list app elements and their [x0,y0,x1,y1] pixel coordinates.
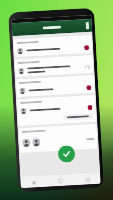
button[interactable]: Notificación [86,85,91,90]
button[interactable]: Contacto 1 [22,138,30,147]
button[interactable]: Notificación [87,105,93,110]
button[interactable]: Atrás [30,179,37,185]
button[interactable]: Notificación [16,75,95,97]
button[interactable]: Confirmar [58,145,75,163]
button[interactable]: Activar [84,65,90,69]
button[interactable]: Notificación [13,35,92,57]
button[interactable] [63,113,93,121]
button[interactable]: Activar [15,55,94,77]
button[interactable]: Contacto 1 [18,124,98,153]
button[interactable]: Recientes [84,176,91,182]
button[interactable]: Contacto 2 [32,138,40,146]
button[interactable]: Notificación [84,45,89,50]
button[interactable]: Notificación [17,95,96,126]
button[interactable]: Inicio [57,178,64,184]
button[interactable]: Más opciones [86,22,89,29]
